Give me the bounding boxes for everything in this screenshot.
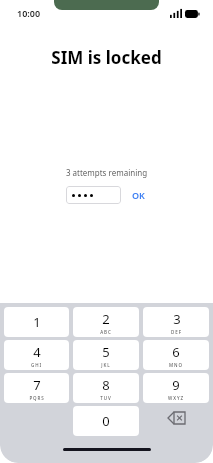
staticText: GHI bbox=[31, 362, 42, 368]
staticText: DEF bbox=[171, 329, 182, 335]
button[interactable]: 1 bbox=[4, 307, 69, 337]
staticText: 0 bbox=[102, 412, 110, 430]
button[interactable]: 3 bbox=[143, 307, 209, 337]
staticText: 7 bbox=[33, 376, 41, 394]
staticText: OK bbox=[132, 189, 145, 201]
button[interactable]: 8 bbox=[73, 373, 139, 403]
button[interactable]: 7 bbox=[4, 373, 69, 403]
staticText: 1 bbox=[33, 313, 41, 331]
button[interactable]: 6 bbox=[143, 340, 209, 370]
button[interactable]: 2 bbox=[73, 307, 139, 337]
button[interactable]: 5 bbox=[73, 340, 139, 370]
staticText: 10:00 bbox=[17, 7, 41, 19]
staticText: 2 bbox=[102, 310, 110, 328]
staticText: 8 bbox=[102, 376, 110, 394]
staticText: 9 bbox=[172, 376, 180, 394]
staticText: TUV bbox=[100, 395, 112, 401]
button[interactable]: 4 bbox=[4, 340, 69, 370]
staticText: ABC bbox=[100, 329, 112, 335]
staticText: 5 bbox=[102, 343, 110, 361]
button[interactable] bbox=[66, 186, 121, 204]
staticText: 3 bbox=[173, 310, 181, 328]
button[interactable]: 0 bbox=[73, 406, 139, 436]
button[interactable]: OK bbox=[130, 187, 147, 203]
staticText: WXYZ bbox=[168, 395, 184, 401]
staticText: 4 bbox=[33, 343, 41, 361]
staticText: PQRS bbox=[29, 395, 45, 401]
staticText: MNO bbox=[169, 362, 183, 368]
staticText: 6 bbox=[172, 343, 180, 361]
staticText: SIM is locked bbox=[0, 46, 213, 69]
button[interactable]: 9 bbox=[143, 373, 209, 403]
staticText: JKL bbox=[101, 362, 111, 368]
staticText: 3 attempts remaining bbox=[0, 167, 213, 178]
button[interactable]: Delete bbox=[161, 406, 191, 430]
